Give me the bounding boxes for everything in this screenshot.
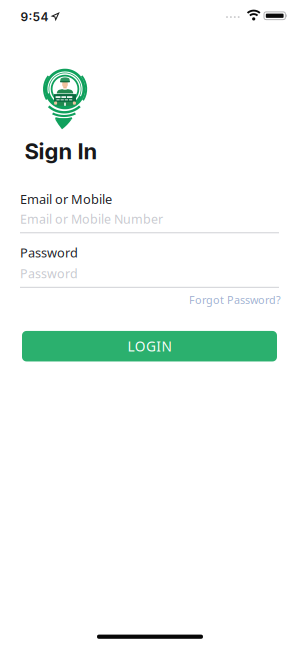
button[interactable]: Password — [20, 261, 279, 285]
staticText: Sign In — [24, 138, 97, 165]
staticText: Forgot Password? — [189, 292, 281, 307]
button[interactable]: LOGIN — [22, 331, 277, 361]
staticText: Email or Mobile Number — [20, 210, 163, 227]
staticText: Password — [20, 244, 78, 261]
staticText: LOGIN — [127, 337, 172, 355]
button[interactable]: Email or Mobile Number — [20, 207, 279, 231]
staticText: Password — [20, 265, 78, 282]
button[interactable]: Forgot Password? — [141, 290, 281, 310]
staticText: Email or Mobile — [20, 190, 112, 208]
staticText: 9:54 — [21, 10, 49, 24]
